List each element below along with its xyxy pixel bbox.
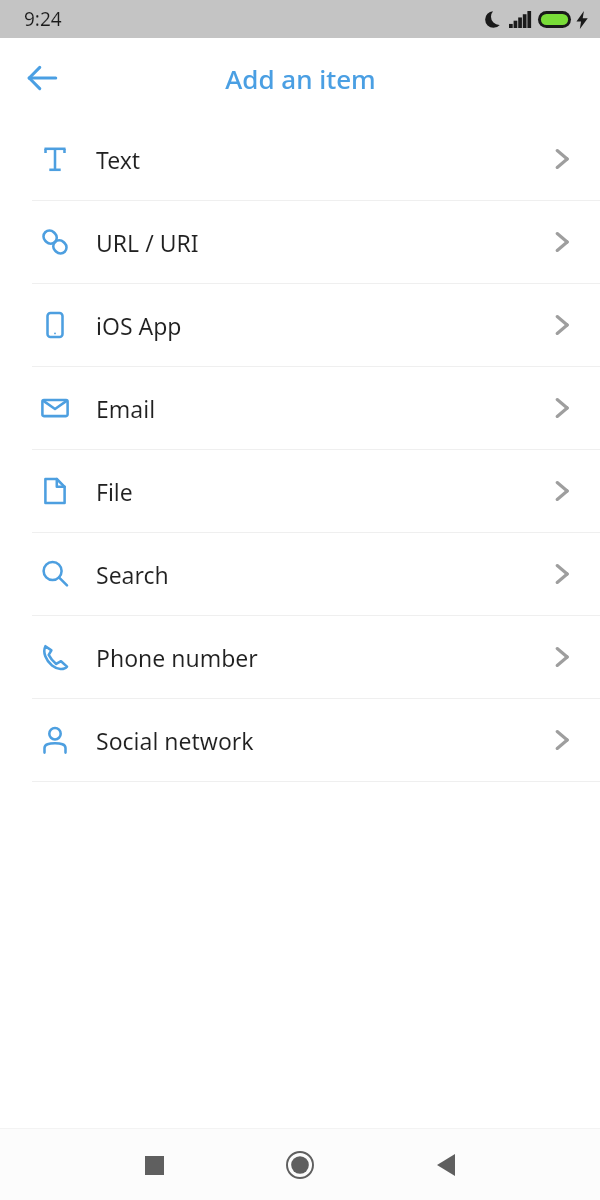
button[interactable]: Back [14, 50, 70, 106]
button[interactable]: Social network [0, 699, 600, 781]
staticText: URL / URI [96, 227, 552, 258]
button[interactable]: Recent apps [123, 1134, 185, 1196]
button[interactable]: Email [0, 367, 600, 449]
button[interactable]: Text [0, 118, 600, 200]
staticText: iOS App [96, 310, 552, 341]
staticText: Add an item [225, 61, 376, 96]
staticText: Email [96, 393, 552, 424]
staticText: Search [96, 559, 552, 590]
staticText: Social network [96, 725, 552, 756]
button[interactable]: iOS App [0, 284, 600, 366]
staticText: File [96, 476, 552, 507]
button[interactable]: URL / URI [0, 201, 600, 283]
staticText: Text [96, 144, 552, 175]
button[interactable]: Home [269, 1134, 331, 1196]
button[interactable]: File [0, 450, 600, 532]
staticText: 9:24 [24, 6, 62, 32]
button[interactable]: Search [0, 533, 600, 615]
button[interactable]: Back [415, 1134, 477, 1196]
button[interactable]: Phone number [0, 616, 600, 698]
staticText: Phone number [96, 642, 552, 673]
